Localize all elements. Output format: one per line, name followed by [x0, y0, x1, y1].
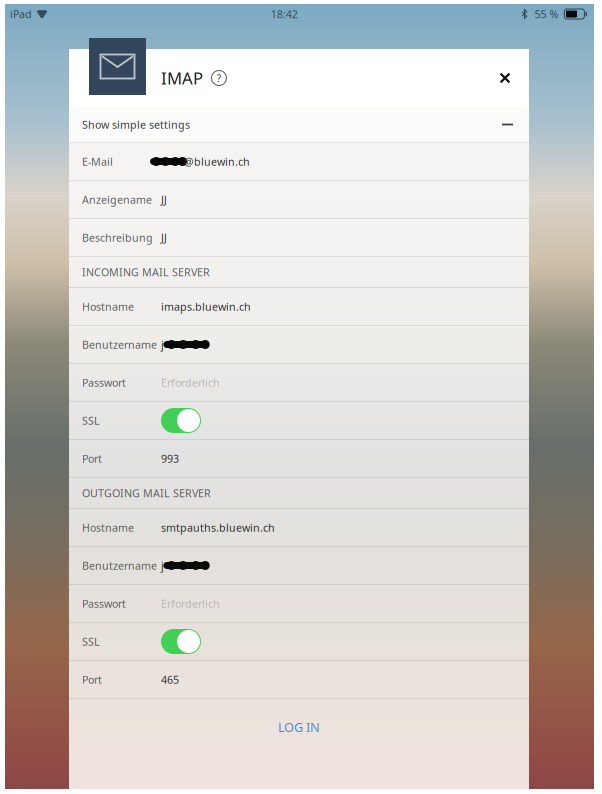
button[interactable]: Anzeigename	[69, 181, 529, 219]
staticText: Benutzername	[82, 337, 157, 352]
staticText: JJ	[161, 230, 167, 245]
button[interactable]: SSL	[69, 623, 529, 661]
staticText: 18:42	[271, 7, 298, 21]
staticText: SSL	[82, 413, 100, 428]
staticText: Show simple settings	[82, 117, 190, 132]
staticText: Benutzername	[82, 558, 157, 573]
button[interactable]: Show simple settings	[69, 107, 529, 143]
staticText: j	[161, 558, 164, 573]
button[interactable]: Port	[69, 661, 529, 699]
button[interactable]: Passwort	[69, 585, 529, 623]
button[interactable]: Close	[486, 55, 524, 101]
button[interactable]: E-Mail	[69, 143, 529, 181]
staticText: Beschreibung	[82, 230, 153, 245]
staticText: imaps.bluewin.ch	[161, 299, 251, 314]
staticText: 465	[161, 672, 179, 687]
staticText: Passwort	[82, 596, 126, 611]
staticText: LOG IN	[278, 718, 320, 736]
staticText: smtpauths.bluewin.ch	[161, 520, 275, 535]
staticText: OUTGOING MAIL SERVER	[82, 486, 211, 500]
button[interactable]: Passwort	[69, 364, 529, 402]
button[interactable]: Hostname	[69, 288, 529, 326]
button[interactable]: Beschreibung	[69, 219, 529, 257]
staticText: @bluewin.ch	[184, 154, 250, 169]
button[interactable]: SSL	[69, 402, 529, 440]
staticText: 55 %	[534, 7, 558, 21]
staticText: ?	[216, 71, 221, 85]
staticText: j	[161, 337, 164, 352]
staticText: Port	[82, 451, 102, 466]
button[interactable]: LOG IN	[69, 699, 529, 755]
staticText: JJ	[161, 192, 167, 207]
staticText: E-Mail	[82, 154, 113, 169]
staticText: Erforderlich	[161, 596, 220, 611]
button[interactable]: Port	[69, 440, 529, 478]
button[interactable]: Benutzername	[69, 547, 529, 585]
staticText: Hostname	[82, 299, 134, 314]
staticText: SSL	[82, 634, 100, 649]
staticText: INCOMING MAIL SERVER	[82, 265, 210, 279]
button[interactable]: Hostname	[69, 509, 529, 547]
staticText: iPad	[10, 7, 32, 21]
staticText: Hostname	[82, 520, 134, 535]
button[interactable]: Benutzername	[69, 326, 529, 364]
staticText: Port	[82, 672, 102, 687]
staticText: 993	[161, 451, 179, 466]
staticText: Anzeigename	[82, 192, 152, 207]
staticText: Passwort	[82, 375, 126, 390]
staticText: IMAP	[161, 67, 203, 89]
staticText: Erforderlich	[161, 375, 220, 390]
